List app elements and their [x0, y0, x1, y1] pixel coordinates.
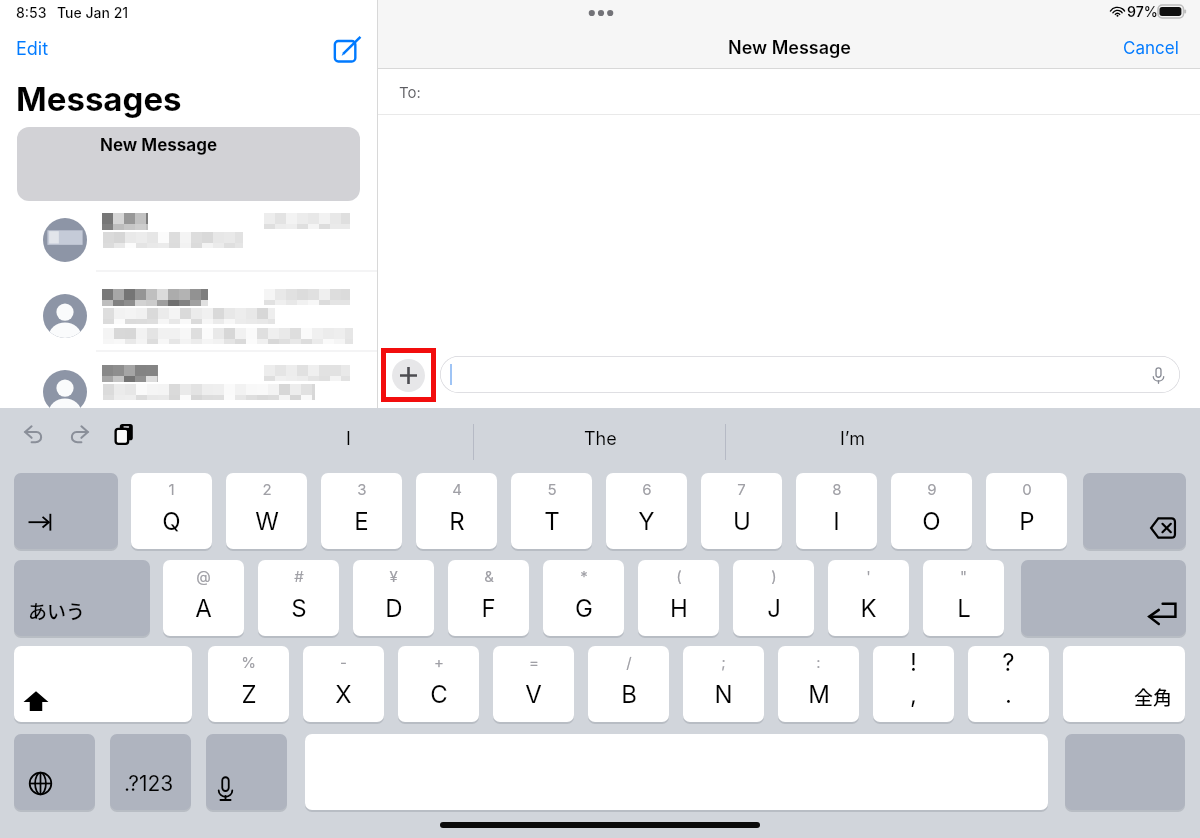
staticText: *	[580, 567, 588, 585]
button[interactable]: Dictate	[206, 734, 287, 810]
staticText: P	[1019, 507, 1035, 536]
button[interactable]: Paste	[112, 421, 138, 447]
button[interactable]: Add attachment	[392, 359, 425, 392]
staticText: The	[584, 428, 617, 450]
staticText: X	[335, 680, 352, 709]
button[interactable]: :	[778, 646, 859, 722]
staticText: 7	[737, 480, 746, 498]
button[interactable]: Cancel	[1123, 38, 1179, 59]
button[interactable]: "	[923, 560, 1004, 636]
staticText: I’m	[840, 428, 865, 450]
button[interactable]: New Message	[17, 127, 360, 201]
button[interactable]: 7	[701, 473, 782, 549]
staticText: V	[525, 680, 542, 709]
staticText: New Message	[100, 135, 218, 156]
button[interactable]: あいう	[14, 560, 150, 636]
staticText: (	[676, 567, 682, 585]
staticText: M	[808, 680, 830, 709]
button[interactable]: Tab	[14, 473, 118, 549]
button[interactable]: '	[828, 560, 909, 636]
staticText: New Message	[728, 37, 851, 59]
button[interactable]: I	[248, 414, 448, 464]
button[interactable]: (	[638, 560, 719, 636]
button[interactable]: Compose new message	[331, 34, 363, 66]
staticText: ;	[721, 653, 726, 671]
button[interactable]	[0, 284, 377, 360]
button[interactable]: 4	[416, 473, 497, 549]
button[interactable]: 3	[321, 473, 402, 549]
staticText: Tue Jan 21	[57, 4, 129, 21]
staticText: Y	[638, 507, 655, 536]
button[interactable]: 6	[606, 473, 687, 549]
button[interactable]: %	[208, 646, 289, 722]
button[interactable]: ¥	[353, 560, 434, 636]
staticText: "	[960, 567, 967, 585]
staticText: 0	[1022, 480, 1032, 498]
button[interactable]: The	[475, 414, 725, 464]
button[interactable]: 0	[986, 473, 1067, 549]
staticText: 1	[168, 480, 175, 498]
button[interactable]: 5	[511, 473, 592, 549]
staticText: Q	[162, 507, 181, 536]
staticText: C	[430, 680, 448, 709]
button[interactable]	[0, 360, 377, 436]
staticText: 6	[642, 480, 652, 498]
staticText: R	[449, 507, 465, 536]
button[interactable]: I’m	[727, 414, 977, 464]
button[interactable]: Return	[1021, 560, 1186, 636]
staticText: T	[544, 507, 560, 536]
button[interactable]	[0, 208, 377, 284]
staticText: N	[714, 680, 733, 709]
button[interactable]: #	[258, 560, 339, 636]
button[interactable]: 9	[891, 473, 972, 549]
button[interactable]: )	[733, 560, 814, 636]
button[interactable]: @	[163, 560, 244, 636]
staticText: #	[294, 567, 304, 585]
button[interactable]: Undo	[22, 422, 46, 446]
staticText: Z	[241, 680, 257, 709]
staticText: To:	[399, 83, 421, 101]
button[interactable]: 8	[796, 473, 877, 549]
staticText: W	[255, 507, 279, 536]
button[interactable]: Redo	[67, 422, 91, 446]
button[interactable]: 全角	[1063, 646, 1185, 722]
staticText: 9	[927, 480, 937, 498]
button[interactable]: Backspace	[1083, 473, 1186, 549]
button[interactable]: +	[398, 646, 479, 722]
staticText: G	[575, 594, 593, 623]
staticText: %	[241, 653, 256, 671]
button[interactable]: 1	[131, 473, 212, 549]
staticText: !	[910, 648, 917, 677]
staticText: )	[771, 567, 777, 585]
staticText: E	[354, 507, 369, 536]
button[interactable]: Edit	[10, 32, 55, 66]
staticText: =	[529, 653, 539, 671]
staticText: F	[481, 594, 496, 623]
button[interactable]: /	[588, 646, 669, 722]
staticText: Edit	[16, 38, 49, 60]
staticText: K	[860, 594, 877, 623]
button[interactable]: .?123	[110, 734, 191, 810]
staticText: ,	[910, 680, 917, 709]
staticText: @	[196, 567, 211, 585]
button[interactable]: Change keyboard	[14, 734, 95, 810]
staticText: +	[434, 653, 444, 671]
button[interactable]: !	[873, 646, 954, 722]
button[interactable]: =	[493, 646, 574, 722]
staticText: S	[291, 594, 307, 623]
button[interactable]: ;	[683, 646, 764, 722]
staticText: H	[670, 594, 688, 623]
button[interactable]: -	[303, 646, 384, 722]
button[interactable]	[440, 356, 1180, 393]
button[interactable]: 2	[226, 473, 307, 549]
staticText: .	[1005, 680, 1012, 709]
button[interactable]: Shift	[14, 646, 192, 722]
staticText: Cancel	[1123, 38, 1179, 59]
button[interactable]: ?	[968, 646, 1049, 722]
button[interactable]: *	[543, 560, 624, 636]
staticText: D	[385, 594, 403, 623]
button[interactable]: &	[448, 560, 529, 636]
staticText: B	[621, 680, 637, 709]
